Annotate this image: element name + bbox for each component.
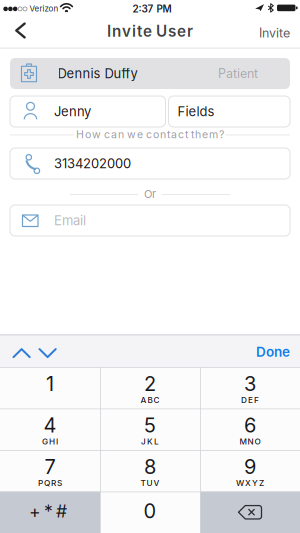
staticText: D E F xyxy=(241,395,259,405)
staticText: J K L xyxy=(141,437,159,446)
staticText: Invite xyxy=(259,26,290,40)
staticText: 7 xyxy=(44,455,55,479)
button[interactable]: Previous field xyxy=(10,334,34,367)
button[interactable]: + * # xyxy=(0,491,100,533)
staticText: 5 xyxy=(144,413,156,437)
staticText: M N O xyxy=(239,437,260,446)
staticText: 6 xyxy=(244,413,256,437)
staticText: Dennis Duffy xyxy=(57,66,137,81)
staticText: 2 xyxy=(144,372,156,396)
button[interactable]: Next field xyxy=(36,334,60,367)
button[interactable]: 1 xyxy=(0,367,100,408)
button[interactable]: 3134202000 xyxy=(10,148,290,179)
button[interactable]: Email xyxy=(10,205,290,236)
button[interactable]: 8 xyxy=(100,450,200,491)
staticText: I n v i t e U s e r xyxy=(107,22,193,40)
button[interactable]: Done xyxy=(230,334,290,367)
staticText: W X Y Z xyxy=(236,478,264,488)
staticText: Done xyxy=(256,344,290,360)
staticText: Email xyxy=(54,213,86,228)
button[interactable]: 4 xyxy=(0,408,100,450)
button[interactable]: Invite xyxy=(238,20,290,48)
button[interactable]: 0 xyxy=(100,491,200,533)
staticText: T U V xyxy=(140,478,159,488)
button[interactable]: 7 xyxy=(0,450,100,491)
button[interactable]: Back xyxy=(0,20,36,48)
button[interactable]: 2 xyxy=(100,367,200,408)
staticText: G H I xyxy=(42,437,58,446)
button[interactable]: Jenny xyxy=(10,96,165,127)
staticText: A B C xyxy=(140,395,159,405)
staticText: Or xyxy=(144,187,156,200)
button[interactable]: 5 xyxy=(100,408,200,450)
staticText: 0 xyxy=(143,499,156,523)
staticText: Jenny xyxy=(54,104,91,119)
staticText: 8 xyxy=(144,455,156,479)
staticText: 1 xyxy=(46,372,54,396)
button[interactable]: Fields xyxy=(168,96,290,127)
staticText: Patient xyxy=(218,66,258,81)
staticText: 9 xyxy=(244,455,256,479)
staticText: Verizon xyxy=(29,4,58,13)
button[interactable]: Dennis Duffy xyxy=(10,58,290,89)
staticText: 3 xyxy=(244,372,256,396)
staticText: P Q R S xyxy=(38,478,62,488)
button[interactable]: 9 xyxy=(200,450,300,491)
button[interactable]: 3 xyxy=(200,367,300,408)
staticText: H o w c a n w e c o n t a c t t h e m ? xyxy=(76,128,224,141)
staticText: 4 xyxy=(43,413,56,437)
button[interactable]: 6 xyxy=(200,408,300,450)
staticText: + * # xyxy=(29,501,67,521)
staticText: 2:37 PM xyxy=(132,3,171,15)
button[interactable]: Delete xyxy=(200,491,300,533)
staticText: 3134202000 xyxy=(54,156,131,171)
staticText: Fields xyxy=(177,104,214,119)
